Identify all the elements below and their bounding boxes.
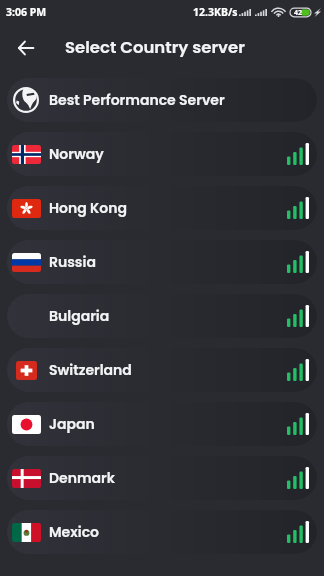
staticText: 42 (294, 8, 303, 18)
button[interactable]: Denmark (7, 456, 317, 500)
staticText: 3:06 PM (6, 5, 47, 19)
button[interactable]: Switzerland (7, 348, 317, 392)
staticText: Mexico (49, 522, 100, 542)
staticText: Best Performance Server (49, 90, 225, 110)
button[interactable]: Back (10, 32, 42, 64)
staticText: Switzerland (49, 360, 132, 380)
staticText: Bulgaria (49, 306, 110, 326)
button[interactable]: Best Performance Server (7, 78, 317, 122)
button[interactable]: Mexico (7, 510, 317, 554)
staticText: Russia (49, 252, 96, 272)
button[interactable]: Japan (7, 402, 317, 446)
staticText: Denmark (49, 468, 115, 488)
button[interactable]: Russia (7, 240, 317, 284)
staticText: Hong Kong (49, 198, 128, 218)
staticText: 12.3KB/s (193, 5, 238, 19)
button[interactable]: Hong Kong (7, 186, 317, 230)
staticText: Select Country server (65, 36, 245, 59)
staticText: Japan (49, 414, 95, 434)
button[interactable]: Bulgaria (7, 294, 317, 338)
button[interactable]: Norway (7, 132, 317, 176)
staticText: Norway (49, 144, 104, 164)
